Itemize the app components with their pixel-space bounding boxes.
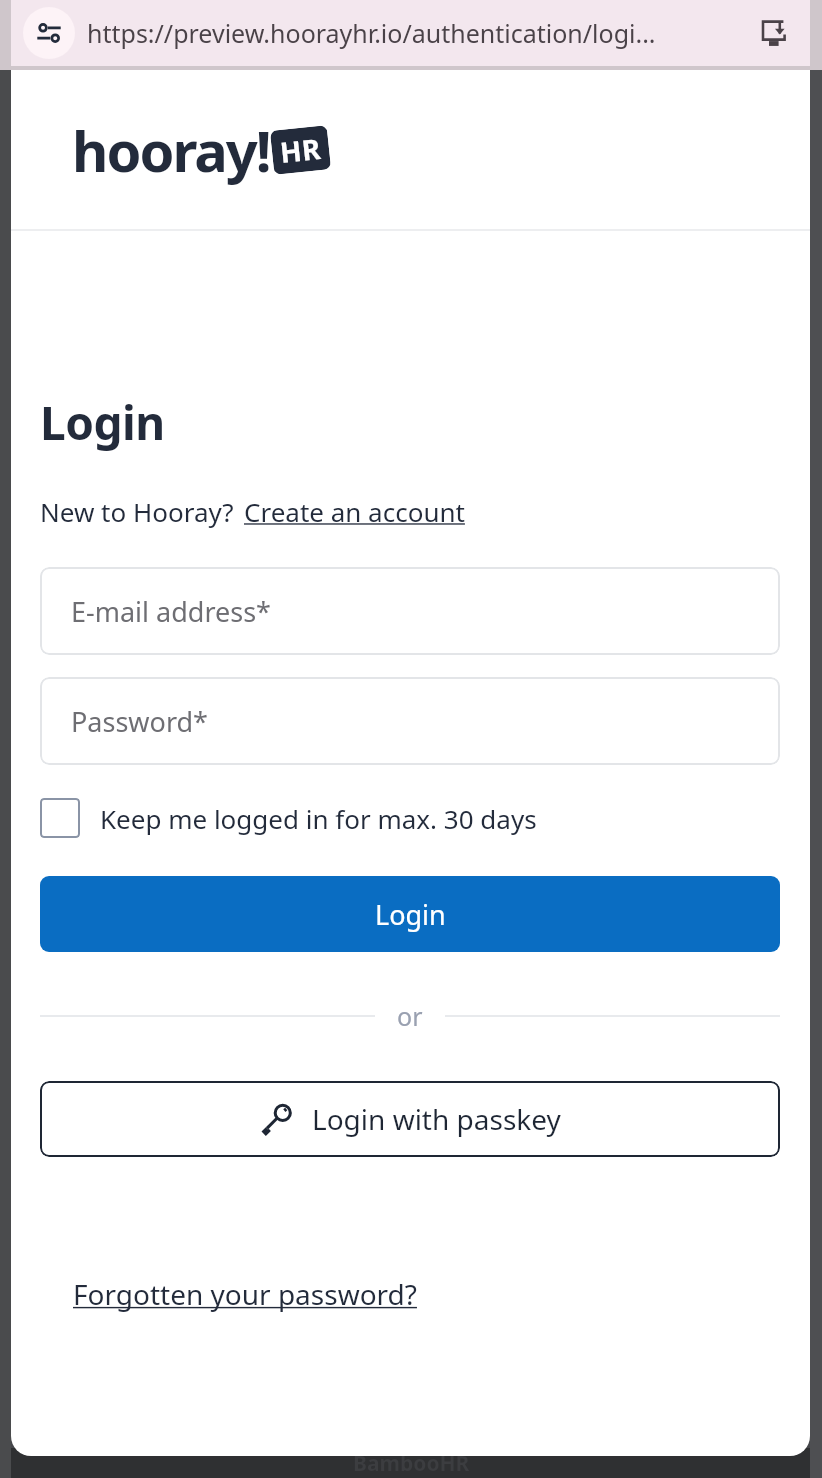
button[interactable]: Keep me logged in for max. 30 days (40, 798, 537, 838)
staticText: BambooHR (353, 1449, 470, 1478)
staticText: HR (278, 129, 323, 171)
staticText: hooray! (72, 112, 270, 188)
staticText: or (397, 999, 423, 1033)
button[interactable]: Install app (752, 10, 798, 56)
staticText: Login (40, 391, 165, 454)
button[interactable]: Forgotten your password? (73, 1275, 417, 1313)
staticText: Password* (71, 703, 208, 740)
button[interactable]: Login with passkey (40, 1081, 780, 1157)
staticText: New to Hooray? (40, 494, 234, 529)
button[interactable]: E-mail address* (40, 567, 780, 655)
staticText: Keep me logged in for max. 30 days (100, 801, 537, 836)
staticText: Create an account (244, 494, 465, 529)
staticText: https://preview.hoorayhr.io/authenticati… (87, 16, 656, 50)
staticText: E-mail address* (71, 593, 271, 630)
button[interactable]: Site settings (23, 7, 75, 59)
button[interactable]: Login (40, 876, 780, 952)
staticText: Forgotten your password? (73, 1275, 417, 1313)
staticText: Login (375, 896, 446, 933)
staticText: Login with passkey (312, 1100, 561, 1138)
button[interactable]: Password* (40, 677, 780, 765)
button[interactable]: Create an account (244, 494, 465, 529)
